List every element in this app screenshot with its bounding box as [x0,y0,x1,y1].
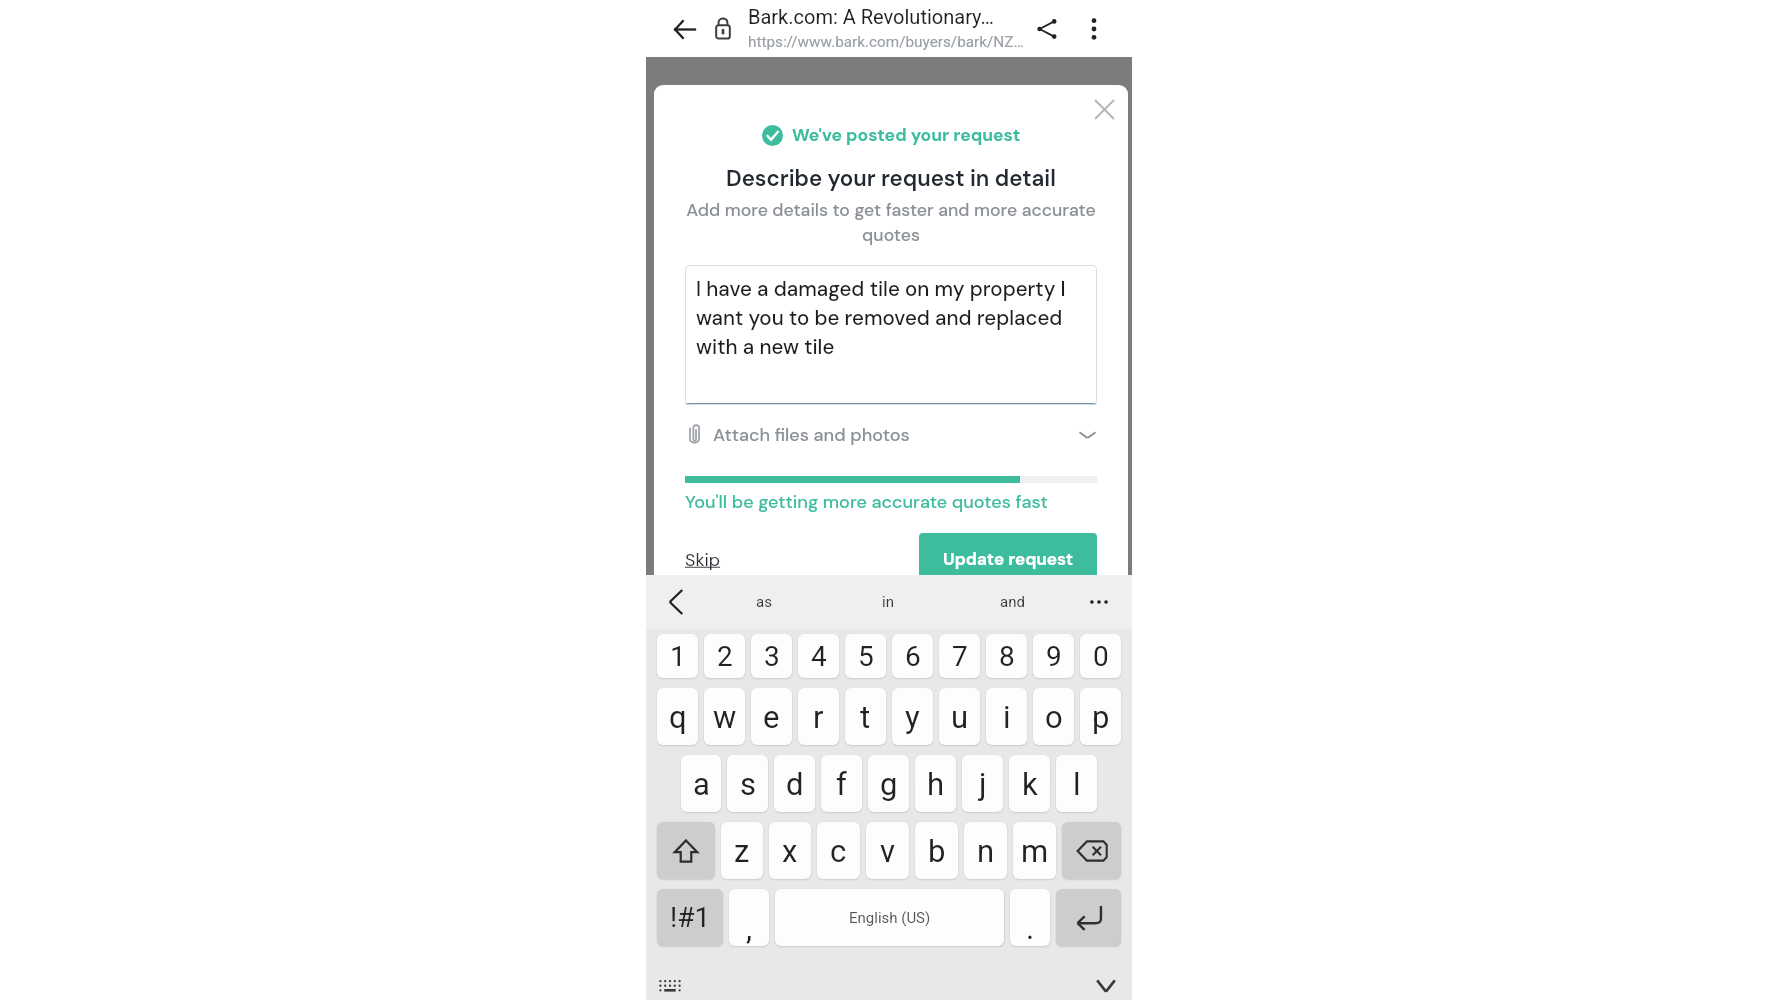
button[interactable]: More suggestions [1078,575,1120,629]
button[interactable]: 7 [939,634,980,678]
staticText: c [830,833,847,869]
button[interactable]: Switch keyboard [650,966,690,1000]
staticText: g [880,766,898,802]
staticText: 1 [670,640,686,673]
button[interactable]: Site information [705,10,741,46]
button[interactable]: l [1056,755,1097,812]
button[interactable]: English (US) [775,889,1004,946]
staticText: Bark.com: A Revolutionary… [748,5,994,28]
button[interactable]: c [817,822,860,879]
staticText: m [1021,833,1049,869]
button[interactable]: More options [1074,9,1114,49]
button[interactable]: e [751,688,792,745]
staticText: as [756,593,772,611]
staticText: t [860,699,871,735]
button[interactable]: y [892,688,933,745]
staticText: Describe your request in detail [726,164,1056,193]
button[interactable]: 6 [892,634,933,678]
staticText: w [713,699,737,735]
staticText: 9 [1046,640,1062,673]
staticText: u [951,699,969,735]
staticText: i [1003,699,1011,735]
button[interactable]: d [774,755,815,812]
staticText: . [1026,910,1035,946]
button[interactable]: p [1080,688,1121,745]
button[interactable]: q [657,688,698,745]
button[interactable]: Previous suggestions [655,575,697,629]
button[interactable]: a [681,755,721,812]
button[interactable]: Skip [685,541,721,578]
button[interactable]: Back [665,10,703,48]
staticText: 0 [1093,640,1109,673]
button[interactable]: r [798,688,839,745]
staticText: 6 [905,640,921,673]
button[interactable]: Backspace [1062,822,1121,879]
staticText: y [905,699,920,735]
button[interactable]: j [962,755,1003,812]
staticText: Skip [685,548,721,571]
button[interactable]: Update request [919,533,1097,585]
button[interactable]: . [1010,889,1050,946]
button[interactable]: k [1009,755,1050,812]
button[interactable]: I have a damaged tile on my property I w… [685,265,1097,405]
staticText: f [836,766,847,802]
staticText: a [693,766,710,802]
button[interactable]: 3 [751,634,792,678]
staticText: o [1045,699,1063,735]
staticText: r [813,699,824,735]
button[interactable]: Hide keyboard [1086,966,1126,1000]
staticText: x [782,833,798,869]
button[interactable]: x [769,822,811,879]
button[interactable]: Close [1085,90,1123,128]
button[interactable]: Attach files and photos [685,423,1097,446]
button[interactable]: m [1013,822,1056,879]
staticText: We've posted your request [792,124,1021,147]
staticText: 8 [999,640,1015,673]
button[interactable]: v [866,822,909,879]
button[interactable]: as [702,575,826,629]
button[interactable]: z [721,822,763,879]
button[interactable]: Shift [657,822,715,879]
staticText: 5 [858,640,874,673]
button[interactable]: h [915,755,956,812]
button[interactable]: s [727,755,768,812]
staticText: p [1092,699,1110,735]
staticText: h [927,766,945,802]
staticText: l [1073,766,1081,802]
staticText: Add more details to get faster and more … [685,199,1097,247]
staticText: k [1022,766,1038,802]
staticText: Attach files and photos [713,423,910,446]
button[interactable]: !#1 [657,889,723,946]
button[interactable]: f [821,755,862,812]
staticText: z [734,833,750,869]
staticText: 3 [764,640,780,673]
button[interactable]: 9 [1033,634,1074,678]
staticText: n [977,833,995,869]
button[interactable]: i [986,688,1027,745]
button[interactable]: 1 [657,634,698,678]
staticText: https://www.bark.com/buyers/bark/NZ… [748,33,1024,51]
staticText: e [763,699,780,735]
button[interactable]: Enter [1056,889,1121,946]
button[interactable]: g [868,755,909,812]
button[interactable]: 8 [986,634,1027,678]
button[interactable]: and [950,575,1074,629]
staticText: , [746,910,753,946]
staticText: d [786,766,804,802]
button[interactable]: b [915,822,958,879]
button[interactable]: 5 [845,634,886,678]
button[interactable]: 2 [704,634,745,678]
staticText: b [928,833,946,869]
button[interactable]: in [826,575,950,629]
button[interactable]: o [1033,688,1074,745]
button[interactable]: 4 [798,634,839,678]
button[interactable]: 0 [1080,634,1121,678]
button[interactable]: , [729,889,769,946]
button[interactable]: w [704,688,745,745]
button[interactable]: n [964,822,1007,879]
staticText: Update request [943,548,1074,570]
button[interactable]: u [939,688,980,745]
staticText: and [1000,593,1025,611]
button[interactable]: t [845,688,886,745]
button[interactable]: Share [1027,9,1067,49]
